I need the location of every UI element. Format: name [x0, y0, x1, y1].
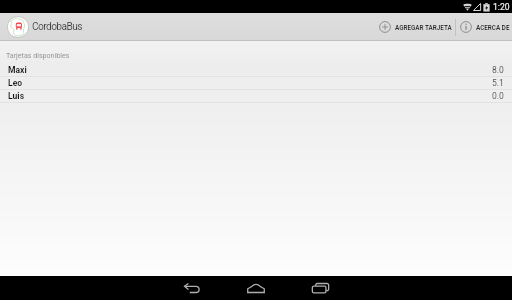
staticText: 5.1 — [492, 78, 504, 88]
staticText: ACERCA DE — [476, 24, 510, 31]
button[interactable]: Luis — [0, 90, 512, 103]
button[interactable]: ACERCA DE — [456, 13, 512, 41]
button[interactable]: Home — [224, 276, 288, 300]
button[interactable]: CordobaBus — [0, 13, 88, 41]
staticText: 1:20 — [493, 2, 510, 12]
staticText: Tarjetas disponibles — [6, 51, 70, 59]
staticText: 8.0 — [492, 65, 504, 75]
staticText: 0.0 — [492, 91, 504, 101]
button[interactable]: AGREGAR TARJETA — [365, 13, 455, 41]
button[interactable]: Leo — [0, 77, 512, 90]
staticText: Leo — [8, 78, 23, 88]
button[interactable]: Back — [160, 276, 224, 300]
button[interactable]: Recent apps — [288, 276, 352, 300]
staticText: AGREGAR TARJETA — [395, 24, 452, 31]
button[interactable]: Maxi — [0, 64, 512, 77]
staticText: Luis — [8, 91, 25, 101]
staticText: Maxi — [8, 65, 27, 75]
staticText: CordobaBus — [32, 21, 82, 33]
